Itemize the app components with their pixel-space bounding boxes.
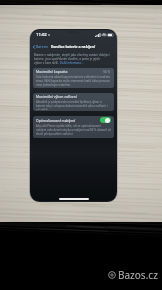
staticText: Kondice baterie a nabíjení [51,44,96,49]
staticText: 11:02 [36,32,47,37]
staticText: Maximální výkon zařízení [36,94,77,99]
staticText: Optimalizované nabíjení [36,118,76,123]
staticText: Aby váš iPhone vydržel déle, učí se opti… [36,124,111,136]
staticText: Tato hodnota udává kapacitu baterie vzhl… [36,75,111,87]
button[interactable]: Optimalizované nabíjení zapnuto [100,117,111,123]
staticText: Baterie s nabíjením, stejně jako všechny… [34,53,112,61]
button[interactable]: Zpět na Baterie [33,44,49,49]
staticText: Baterie [36,44,49,49]
staticText: Maximální kapacita [36,69,68,74]
staticText: výkon v čase nižší. [34,61,60,65]
button[interactable]: Optimalizované nabíjení [36,117,111,123]
staticText: 94 % [103,70,111,74]
button[interactable]: Další informace… [60,61,84,65]
staticText: Aktuálně je podporován normální špičkový… [36,100,111,110]
staticText: Bazos.cz [118,268,158,282]
button[interactable]: Maximální kapacita [36,69,111,74]
